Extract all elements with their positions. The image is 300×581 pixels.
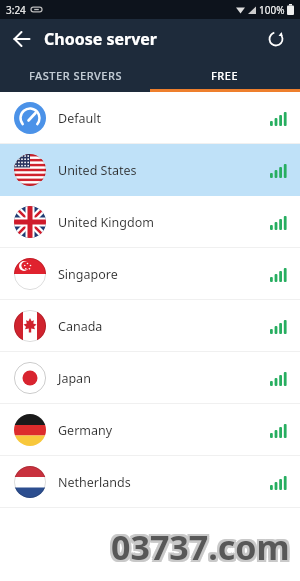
staticText: Japan (58, 370, 91, 387)
button[interactable] (252, 19, 300, 58)
button[interactable] (0, 19, 44, 58)
staticText: Netherlands (58, 474, 131, 491)
button[interactable]: Singapore (0, 248, 300, 300)
staticText: Singapore (58, 266, 118, 283)
staticText: 100% (259, 3, 285, 17)
staticText: Choose server (44, 28, 157, 50)
staticText: Canada (58, 318, 103, 335)
button[interactable]: Default (0, 92, 300, 144)
staticText: 03737.com (113, 526, 292, 572)
staticText: 03737.com (109, 524, 288, 570)
staticText: United Kingdom (58, 214, 154, 231)
staticText: Germany (58, 422, 113, 439)
button[interactable]: United Kingdom (0, 196, 300, 248)
staticText: FASTER SERVERS (29, 68, 122, 83)
staticText: 03737.com (111, 522, 290, 568)
staticText: United States (58, 162, 137, 179)
button[interactable]: Germany (0, 404, 300, 456)
staticText: 03737.com (109, 526, 288, 572)
button[interactable]: Canada (0, 300, 300, 352)
button[interactable]: Japan (0, 352, 300, 404)
staticText: 03737.com (113, 524, 292, 570)
staticText: 3:24 (6, 3, 26, 17)
button[interactable]: Netherlands (0, 456, 300, 508)
staticText: Default (58, 110, 101, 127)
button[interactable]: FASTER SERVERS (0, 58, 150, 92)
staticText: FREE (211, 68, 239, 83)
button[interactable]: United States (0, 144, 300, 196)
button[interactable]: FREE (150, 58, 300, 92)
staticText: 03737.com (113, 522, 292, 568)
staticText: 03737.com (111, 526, 290, 572)
staticText: 03737.com (111, 524, 290, 570)
staticText: 03737.com (109, 522, 288, 568)
